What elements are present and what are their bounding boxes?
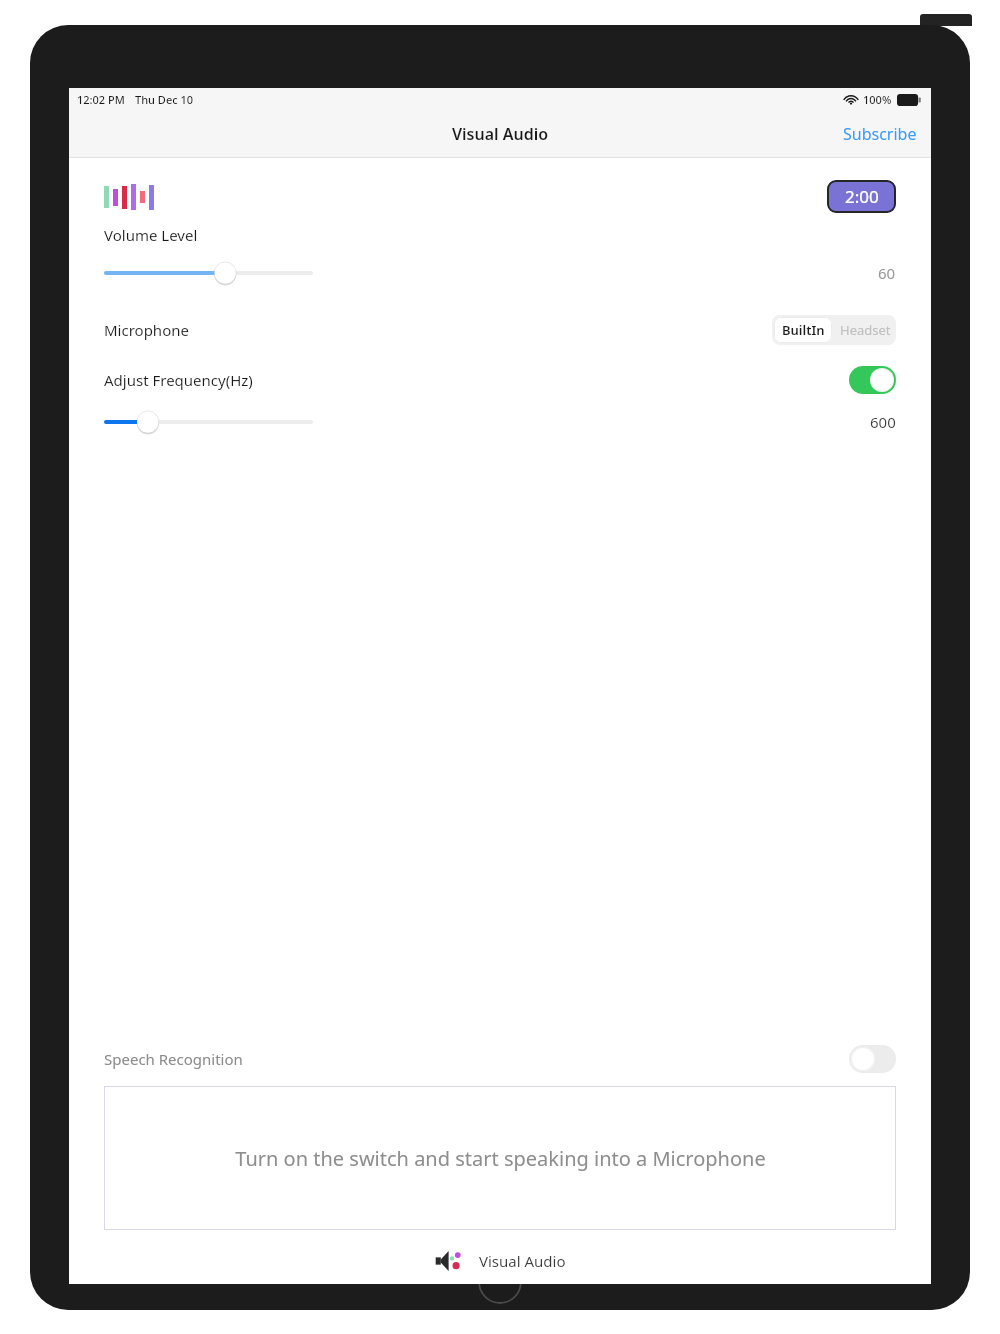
staticText: Adjust Frequency(Hz) (104, 370, 253, 390)
staticText: Thu Dec 10 (135, 92, 194, 107)
staticText: BuiltIn (782, 321, 825, 339)
button[interactable]: Headset (834, 315, 896, 345)
button[interactable]: BuiltIn (774, 317, 832, 343)
other: Audio levels (104, 183, 156, 211)
staticText: 100% (863, 92, 892, 107)
staticText: Subscribe (843, 123, 917, 145)
staticText: Visual Audio (452, 123, 549, 145)
staticText: Microphone (104, 320, 189, 340)
button[interactable]: Subscribe (829, 113, 931, 155)
button[interactable]: Switch off (849, 1045, 896, 1073)
staticText: 600 (870, 412, 896, 432)
staticText: 60 (878, 263, 896, 283)
button[interactable]: Visual Audio (435, 1248, 566, 1274)
button[interactable]: Slider (104, 259, 313, 287)
staticText: 12:02 PM (77, 92, 125, 107)
button[interactable]: 2:00 (827, 180, 896, 213)
staticText: Turn on the switch and start speaking in… (235, 1145, 766, 1172)
staticText: Visual Audio (479, 1251, 566, 1271)
staticText: Volume Level (104, 225, 198, 245)
other: Visual Audio (435, 1248, 469, 1274)
button[interactable]: Slider (104, 408, 313, 436)
staticText: 2:00 (845, 185, 879, 208)
staticText: Headset (840, 321, 891, 339)
staticText: Speech Recognition (104, 1049, 243, 1069)
button[interactable]: Switch on (849, 366, 896, 394)
